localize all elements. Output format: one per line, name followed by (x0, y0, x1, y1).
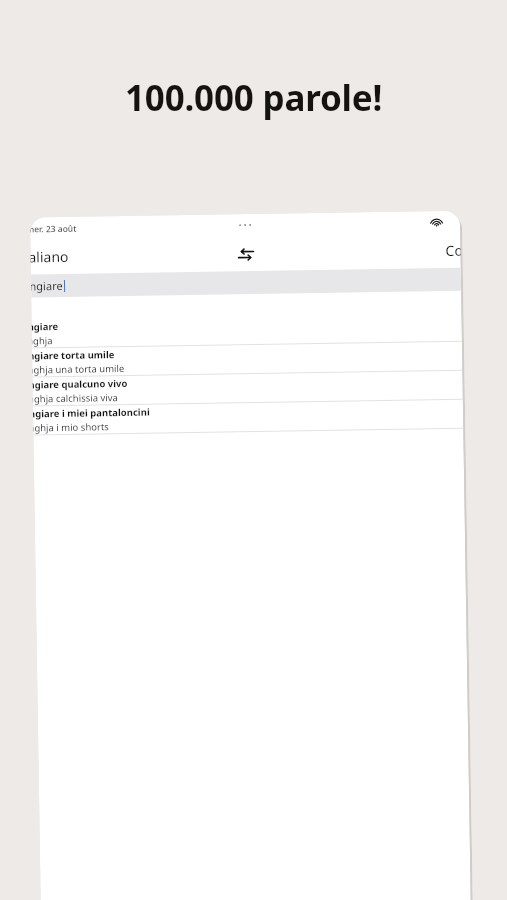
staticText: mangiare (32, 320, 59, 333)
button[interactable]: Italiano (30, 247, 69, 266)
button[interactable]: mangiare (32, 313, 462, 347)
button[interactable]: mangiare qualcuno vivo (32, 371, 463, 405)
button[interactable]: mangiare (31, 268, 461, 297)
staticText: mer. 23 août (30, 223, 77, 235)
staticText: mangiare (31, 278, 63, 293)
staticText: mangiare i miei pantaloncini (33, 406, 150, 420)
staticText: mangiare qualcuno vivo (32, 377, 128, 391)
staticText: manghja una torta umile (32, 362, 124, 376)
staticText: manghja calchissia viva (33, 391, 119, 405)
button[interactable]: mangiare i miei pantaloncini (33, 400, 463, 434)
button[interactable]: Corsu (445, 241, 461, 260)
staticText: manghja i mio shorts (33, 420, 109, 434)
button[interactable]: mangiare torta umile (32, 342, 462, 376)
staticText: mangiare torta umile (32, 348, 115, 362)
staticText: 100.000 parole! (125, 74, 383, 122)
button[interactable]: Swap languages (232, 241, 259, 267)
staticText: manghja (32, 334, 53, 347)
